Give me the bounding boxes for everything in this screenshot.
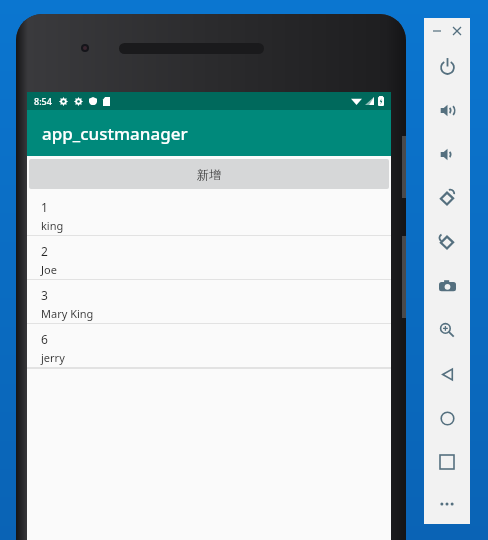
- button[interactable]: Close: [450, 24, 464, 38]
- button[interactable]: Rotate right: [424, 220, 470, 264]
- staticText: 新增: [197, 167, 221, 182]
- staticText: app_custmanager: [42, 122, 188, 145]
- button[interactable]: Home: [424, 396, 470, 440]
- button[interactable]: Volume down: [424, 132, 470, 176]
- button[interactable]: 2: [27, 236, 391, 280]
- staticText: 2: [41, 243, 48, 259]
- button[interactable]: More: [424, 484, 470, 524]
- staticText: Mary King: [41, 306, 94, 321]
- button[interactable]: 3: [27, 280, 391, 324]
- button[interactable]: 新增: [29, 159, 389, 189]
- staticText: Joe: [41, 262, 57, 277]
- button[interactable]: Volume up: [424, 88, 470, 132]
- staticText: king: [41, 218, 64, 233]
- button[interactable]: 6: [27, 324, 391, 368]
- staticText: 8:54: [34, 95, 52, 107]
- button[interactable]: Overview: [424, 440, 470, 484]
- staticText: 3: [41, 287, 48, 303]
- button[interactable]: Zoom: [424, 308, 470, 352]
- button[interactable]: Back: [424, 352, 470, 396]
- staticText: 1: [41, 199, 48, 215]
- button[interactable]: 1: [27, 192, 391, 236]
- button[interactable]: Power: [424, 44, 470, 88]
- button[interactable]: Minimize: [430, 24, 444, 38]
- staticText: 6: [41, 331, 48, 347]
- button[interactable]: Rotate left: [424, 176, 470, 220]
- staticText: jerry: [41, 350, 65, 365]
- button[interactable]: Take screenshot: [424, 264, 470, 308]
